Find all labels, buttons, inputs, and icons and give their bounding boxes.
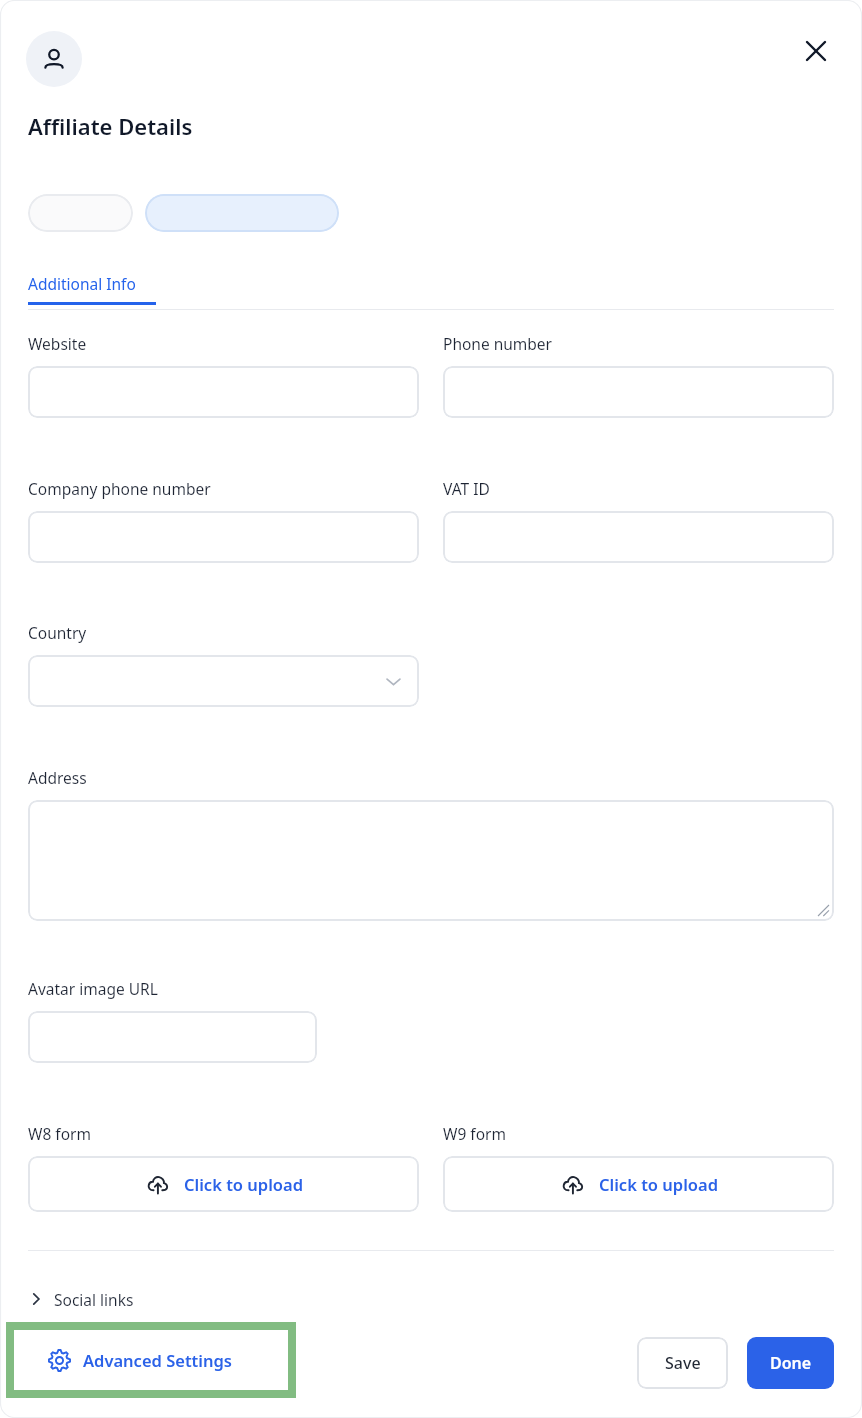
button[interactable]	[28, 800, 834, 921]
button[interactable]: Click to upload	[28, 1156, 419, 1212]
button[interactable]: Advanced Settings	[14, 1330, 288, 1390]
staticText: Additional Info	[28, 273, 136, 294]
button[interactable]: Profile avatar	[26, 31, 82, 87]
button[interactable]: Close	[794, 29, 838, 73]
staticText: Click to upload	[184, 1173, 303, 1195]
staticText: Company phone number	[28, 478, 211, 499]
button[interactable]: Social links	[28, 1283, 134, 1315]
button[interactable]: Tag placeholder	[28, 194, 133, 232]
staticText: Advanced Settings	[83, 1349, 232, 1371]
button[interactable]: Status placeholder	[145, 194, 339, 232]
staticText: Save	[665, 1352, 701, 1374]
button[interactable]: Additional Info	[28, 273, 156, 305]
staticText: Social links	[54, 1289, 134, 1310]
staticText: Website	[28, 333, 87, 354]
button[interactable]: Done	[747, 1337, 834, 1389]
staticText: Phone number	[443, 333, 553, 354]
button[interactable]: Save	[637, 1337, 728, 1389]
staticText: VAT ID	[443, 478, 490, 499]
button[interactable]	[28, 655, 419, 707]
button[interactable]	[443, 511, 834, 563]
staticText: Country	[28, 622, 87, 643]
staticText: Affiliate Details	[28, 111, 193, 141]
button[interactable]: Click to upload	[443, 1156, 834, 1212]
button[interactable]	[443, 366, 834, 418]
staticText: W9 form	[443, 1123, 506, 1144]
staticText: Click to upload	[599, 1173, 718, 1195]
button[interactable]	[28, 1011, 317, 1063]
staticText: W8 form	[28, 1123, 91, 1144]
staticText: Address	[28, 767, 87, 788]
button[interactable]	[28, 366, 419, 418]
button[interactable]	[28, 511, 419, 563]
staticText: Avatar image URL	[28, 978, 158, 999]
staticText: Done	[770, 1352, 812, 1374]
